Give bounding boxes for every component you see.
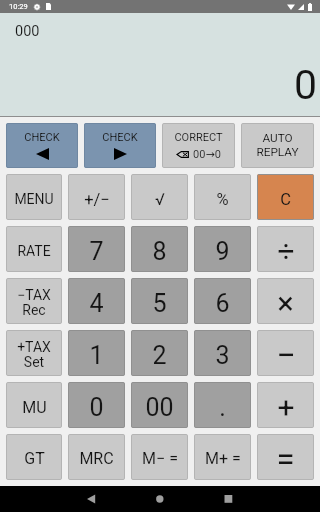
staticText: +TAX Set xyxy=(17,339,51,370)
button[interactable]: CORRECT xyxy=(162,123,235,168)
button[interactable]: 2 xyxy=(131,330,188,376)
staticText: 00 xyxy=(145,393,174,422)
staticText: 6 xyxy=(215,289,230,318)
staticText: GT xyxy=(24,449,45,468)
staticText: % xyxy=(216,190,229,209)
staticText: 5 xyxy=(152,289,167,318)
button[interactable]: 00 xyxy=(131,382,188,428)
button[interactable]: AUTO REPLAY xyxy=(241,123,314,168)
button[interactable]: 4 xyxy=(68,278,125,324)
staticText: + xyxy=(277,390,295,425)
staticText: M− = xyxy=(142,449,178,468)
staticText: MENU xyxy=(14,191,54,207)
button[interactable]: 6 xyxy=(194,278,251,324)
staticText: 1 xyxy=(89,341,104,370)
staticText: 0 xyxy=(89,393,104,422)
staticText: ÷ xyxy=(277,234,295,269)
staticText: CHECK xyxy=(24,131,60,144)
staticText: 0 xyxy=(293,61,317,109)
staticText: RATE xyxy=(17,243,51,259)
staticText: 8 xyxy=(152,237,167,266)
button[interactable]: 7 xyxy=(68,226,125,272)
button[interactable]: M− = xyxy=(131,434,188,480)
staticText: 3 xyxy=(215,341,230,370)
staticText: AUTO REPLAY xyxy=(256,131,299,159)
staticText: . xyxy=(219,393,226,422)
staticText: 10:29 xyxy=(9,2,28,11)
button[interactable]: 5 xyxy=(131,278,188,324)
button[interactable]: MRC xyxy=(68,434,125,480)
button[interactable]: RATE xyxy=(6,226,62,272)
staticText: CHECK xyxy=(102,131,138,144)
button[interactable]: 1 xyxy=(68,330,125,376)
staticText: 7 xyxy=(89,237,104,266)
staticText: 9 xyxy=(215,237,230,266)
button[interactable]: MENU xyxy=(6,174,62,220)
staticText: +/− xyxy=(84,190,110,209)
button[interactable]: +TAX Set xyxy=(6,330,62,376)
button[interactable]: MU xyxy=(6,382,62,428)
button[interactable]: + xyxy=(257,382,314,428)
button[interactable]: +/− xyxy=(68,174,125,220)
button[interactable]: . xyxy=(194,382,251,428)
staticText: MRC xyxy=(79,449,114,468)
staticText: 000 xyxy=(15,23,40,40)
button[interactable]: % xyxy=(194,174,251,220)
button[interactable]: GT xyxy=(6,434,62,480)
staticText: MU xyxy=(22,398,47,417)
button[interactable]: 0 xyxy=(68,382,125,428)
button[interactable]: C xyxy=(257,174,314,220)
staticText: 2 xyxy=(152,341,167,370)
staticText: −TAX Rec xyxy=(17,287,51,318)
button[interactable]: 8 xyxy=(131,226,188,272)
button[interactable]: = xyxy=(257,434,314,480)
staticText: C xyxy=(280,190,291,209)
staticText: CORRECT xyxy=(174,131,223,144)
button[interactable]: ÷ xyxy=(257,226,314,272)
button[interactable]: CHECK xyxy=(6,123,78,168)
button[interactable]: × xyxy=(257,278,314,324)
button[interactable]: − xyxy=(257,330,314,376)
staticText: 4 xyxy=(89,289,104,318)
staticText: − xyxy=(276,335,296,375)
button[interactable]: Back xyxy=(71,486,111,512)
staticText: = xyxy=(276,440,295,479)
button[interactable]: Home xyxy=(140,486,180,512)
staticText: 00→0 xyxy=(193,148,221,161)
staticText: × xyxy=(277,285,294,321)
button[interactable]: 3 xyxy=(194,330,251,376)
button[interactable]: √ xyxy=(131,174,188,220)
button[interactable]: 9 xyxy=(194,226,251,272)
staticText: √ xyxy=(155,190,165,209)
button[interactable]: M+ = xyxy=(194,434,251,480)
button[interactable]: CHECK xyxy=(84,123,156,168)
staticText: M+ = xyxy=(205,449,241,468)
button[interactable]: −TAX Rec xyxy=(6,278,62,324)
button[interactable]: Recent apps xyxy=(208,486,248,512)
